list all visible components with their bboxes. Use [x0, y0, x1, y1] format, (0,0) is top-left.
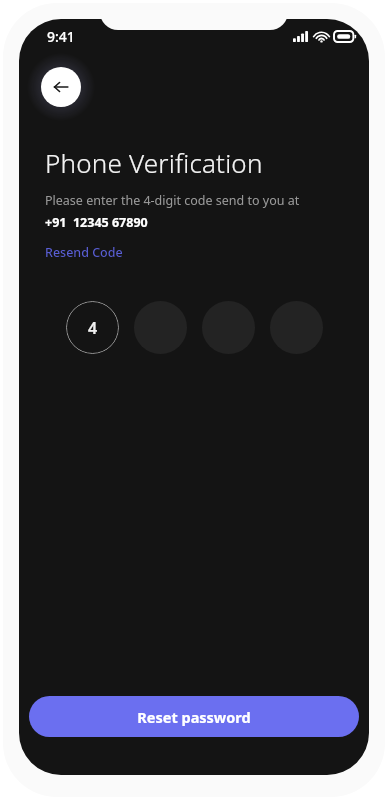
button[interactable]: Empty digit [270, 301, 323, 354]
staticText: +91 12345 67890 [45, 214, 148, 231]
button[interactable]: Back [41, 67, 81, 107]
button[interactable]: Reset password [29, 696, 359, 737]
button[interactable]: Resend Code [45, 244, 123, 261]
staticText: Please enter the 4-digit code send to yo… [45, 192, 300, 209]
staticText: Reset password [137, 707, 251, 727]
staticText: 9:41 [47, 27, 75, 46]
staticText: Phone Verification [45, 145, 263, 180]
staticText: 4 [88, 317, 98, 339]
button[interactable]: Empty digit [134, 301, 187, 354]
button[interactable]: Empty digit [202, 301, 255, 354]
staticText: Resend Code [45, 244, 123, 261]
button[interactable]: Digit 4 [66, 301, 119, 354]
